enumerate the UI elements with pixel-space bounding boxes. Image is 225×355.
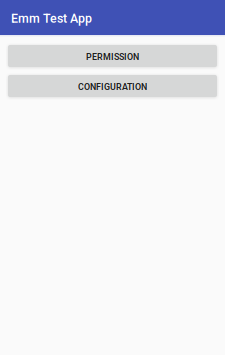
staticText: CONFIGURATION: [78, 82, 147, 92]
staticText: Emm Test App: [11, 11, 92, 26]
staticText: PERMISSION: [86, 52, 139, 62]
button[interactable]: CONFIGURATION: [8, 75, 217, 97]
button[interactable]: PERMISSION: [8, 45, 217, 67]
